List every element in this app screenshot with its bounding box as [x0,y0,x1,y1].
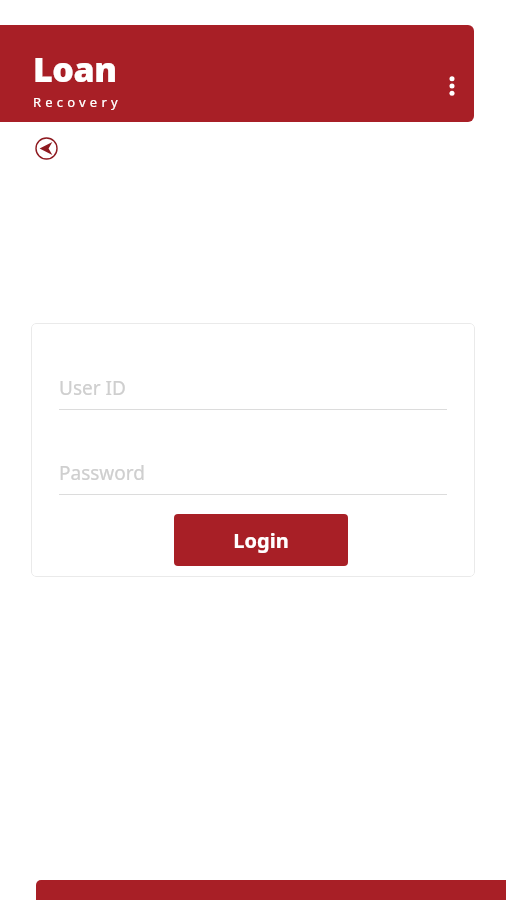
button[interactable] [36,880,506,900]
staticText: Password [59,460,145,486]
button[interactable]: More options [430,64,474,108]
button[interactable]: Back [24,126,68,170]
staticText: Loan [33,46,117,92]
staticText: Recovery [33,93,122,111]
staticText: Login [233,527,289,554]
button[interactable]: User ID [59,375,447,410]
button[interactable]: Password [59,460,447,495]
button[interactable]: Login [174,514,348,566]
staticText: User ID [59,375,126,401]
